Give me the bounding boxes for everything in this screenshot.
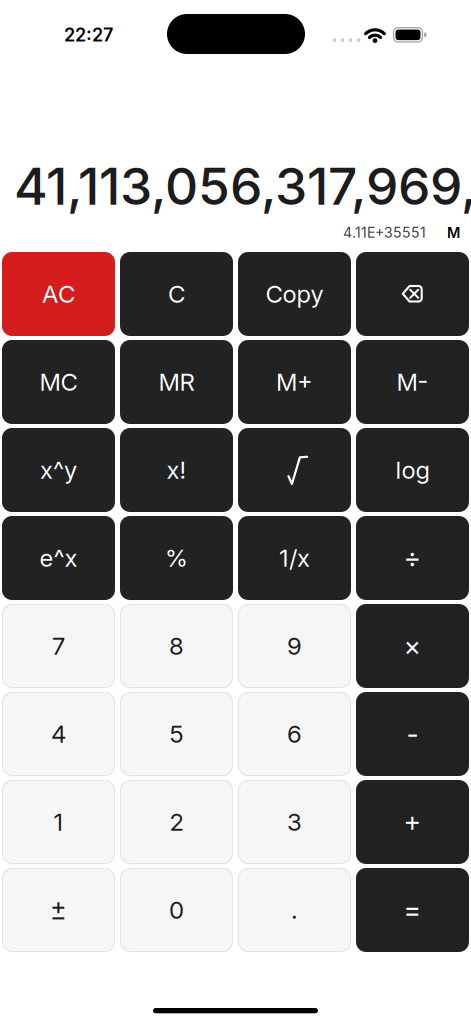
- staticText: 5: [169, 719, 183, 748]
- staticText: +: [403, 806, 421, 838]
- staticText: 8: [169, 631, 184, 660]
- staticText: ×: [403, 630, 421, 662]
- staticText: 0: [169, 895, 184, 924]
- button[interactable]: ÷: [356, 516, 469, 600]
- button[interactable]: Delete: [356, 252, 469, 336]
- button[interactable]: MR: [120, 340, 233, 424]
- staticText: x!: [166, 455, 186, 484]
- button[interactable]: AC: [2, 252, 115, 336]
- button[interactable]: Copy: [238, 252, 351, 336]
- staticText: 9: [287, 631, 302, 660]
- staticText: .: [291, 895, 298, 924]
- staticText: %: [165, 543, 188, 572]
- staticText: 7: [52, 631, 65, 660]
- staticText: MR: [158, 367, 194, 396]
- staticText: M-: [396, 367, 428, 396]
- staticText: =: [403, 894, 421, 926]
- staticText: 2: [169, 807, 183, 836]
- button[interactable]: C: [120, 252, 233, 336]
- button[interactable]: %: [120, 516, 233, 600]
- button[interactable]: M+: [238, 340, 351, 424]
- staticText: 6: [287, 719, 302, 748]
- button[interactable]: 1: [2, 780, 115, 864]
- button[interactable]: 1/x: [238, 516, 351, 600]
- button[interactable]: 7: [2, 604, 115, 688]
- button[interactable]: x!: [120, 428, 233, 512]
- staticText: MC: [39, 367, 77, 396]
- staticText: 41,113,056,317,969,: [14, 155, 471, 217]
- button[interactable]: 8: [120, 604, 233, 688]
- staticText: 1: [53, 807, 63, 836]
- staticText: 4: [51, 719, 66, 748]
- button[interactable]: 9: [238, 604, 351, 688]
- staticText: C: [168, 279, 185, 308]
- button[interactable]: 6: [238, 692, 351, 776]
- staticText: -: [406, 718, 418, 750]
- button[interactable]: Square root: [238, 428, 351, 512]
- button[interactable]: =: [356, 868, 469, 952]
- staticText: ÷: [403, 542, 421, 574]
- button[interactable]: 4: [2, 692, 115, 776]
- staticText: 22:27: [64, 24, 113, 46]
- staticText: x^y: [40, 455, 77, 484]
- button[interactable]: Plus or minus: [2, 868, 115, 952]
- staticText: AC: [42, 279, 75, 308]
- button[interactable]: 5: [120, 692, 233, 776]
- staticText: log: [395, 455, 429, 484]
- staticText: Copy: [265, 279, 323, 308]
- button[interactable]: log: [356, 428, 469, 512]
- staticText: 4.11E+35551: [343, 224, 426, 241]
- button[interactable]: 0: [120, 868, 233, 952]
- button[interactable]: e^x: [2, 516, 115, 600]
- button[interactable]: ×: [356, 604, 469, 688]
- button[interactable]: x^y: [2, 428, 115, 512]
- staticText: M+: [276, 367, 313, 396]
- button[interactable]: M-: [356, 340, 469, 424]
- staticText: 3: [287, 807, 302, 836]
- staticText: M: [447, 224, 460, 241]
- button[interactable]: -: [356, 692, 469, 776]
- button[interactable]: MC: [2, 340, 115, 424]
- button[interactable]: 2: [120, 780, 233, 864]
- button[interactable]: .: [238, 868, 351, 952]
- staticText: 1/x: [279, 543, 310, 572]
- staticText: e^x: [39, 543, 77, 572]
- button[interactable]: +: [356, 780, 469, 864]
- button[interactable]: 3: [238, 780, 351, 864]
